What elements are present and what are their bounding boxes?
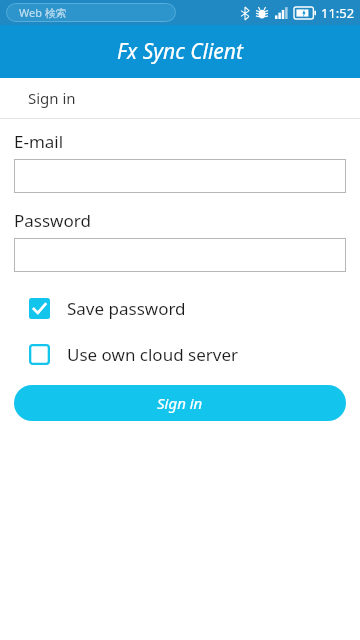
- staticText: Password: [14, 209, 91, 232]
- button[interactable]: Sign in: [0, 78, 360, 118]
- button[interactable]: Web search: [6, 3, 176, 22]
- staticText: Save password: [67, 297, 186, 320]
- staticText: Sign in: [157, 393, 203, 413]
- staticText: 11:52: [321, 4, 355, 22]
- staticText: Sign in: [28, 88, 76, 108]
- button[interactable]: Text input: [14, 159, 346, 193]
- button[interactable]: Save password: [14, 293, 346, 323]
- button[interactable]: Text input: [14, 238, 346, 272]
- button[interactable]: Sign in: [14, 385, 346, 421]
- staticText: E-mail: [14, 130, 64, 153]
- staticText: Use own cloud server: [67, 343, 239, 366]
- button[interactable]: Use own cloud server: [14, 339, 346, 369]
- staticText: Web 検索: [19, 5, 67, 20]
- staticText: Fx Sync Client: [117, 37, 243, 66]
